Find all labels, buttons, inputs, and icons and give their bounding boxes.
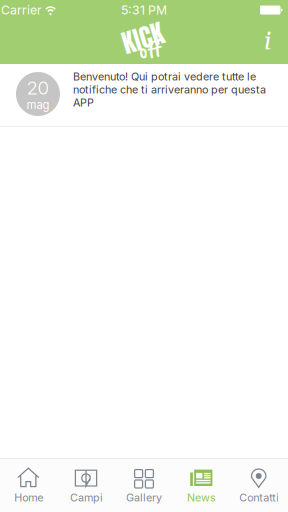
staticText: off [138,36,161,64]
staticText: Gallery [126,491,162,504]
staticText: i [264,26,272,58]
staticText: 5:31 PM [121,3,167,17]
staticText: Carrier [1,3,42,17]
staticText: mag [26,98,49,112]
button[interactable]: 20 [0,64,288,127]
staticText: KICK [122,19,164,57]
button[interactable]: Home [0,459,58,512]
staticText: Benvenuto! Qui potrai vedere tutte le no… [73,70,266,109]
button[interactable]: Campi [58,459,115,512]
button[interactable]: Info [248,20,288,64]
staticText: Campi [70,491,103,504]
button[interactable]: Gallery [115,459,173,512]
staticText: 20 [26,76,49,99]
staticText: News [187,491,216,504]
staticText: Contatti [239,491,279,504]
button[interactable]: News [173,459,230,512]
button[interactable]: Contatti [230,459,288,512]
staticText: Home [14,491,43,504]
